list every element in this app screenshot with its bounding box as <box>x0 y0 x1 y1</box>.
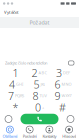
button[interactable]: Backspace <box>67 115 74 122</box>
staticText: 0 <box>35 100 41 114</box>
button[interactable]: 5 <box>28 78 51 90</box>
button[interactable]: * <box>4 101 28 113</box>
staticText: Požadat <box>29 19 49 26</box>
button[interactable]: Poslední <box>20 125 40 140</box>
staticText: GHI <box>16 82 23 87</box>
button[interactable]: Oblíbené <box>0 125 20 140</box>
button[interactable]: Hide keypad <box>5 115 12 122</box>
staticText: TUV <box>39 93 46 98</box>
staticText: 4 <box>9 77 15 91</box>
button[interactable]: 8 <box>28 90 51 101</box>
staticText: PQRS <box>15 93 24 98</box>
staticText: Poslední <box>23 134 37 139</box>
button[interactable]: Video call <box>68 61 74 65</box>
staticText: 8 <box>33 89 39 103</box>
button[interactable]: Požadat <box>0 17 79 28</box>
staticText: DEF <box>63 70 70 75</box>
staticText: 6 <box>55 77 61 91</box>
staticText: Kontakty <box>42 134 56 139</box>
staticText: 7 <box>8 89 14 103</box>
button[interactable]: Hlasová <box>59 125 79 140</box>
button[interactable]: 2 <box>28 67 51 78</box>
staticText: Vytáčet <box>4 9 19 15</box>
staticText: ABC <box>38 70 47 75</box>
staticText: 3 <box>56 66 62 80</box>
staticText: * <box>13 100 19 114</box>
staticText: Hlasová <box>62 134 76 139</box>
staticText: + <box>42 105 44 110</box>
button[interactable]: 1 <box>4 67 28 78</box>
staticText: # <box>59 100 66 114</box>
staticText: 5 <box>34 77 40 91</box>
staticText: MNO <box>61 82 71 87</box>
button[interactable]: Kontakty <box>39 125 59 140</box>
button[interactable]: # <box>51 101 75 113</box>
button[interactable]: 0 <box>28 101 51 113</box>
button[interactable]: 9 <box>51 90 75 101</box>
button[interactable]: 4 <box>4 78 28 90</box>
staticText: Zadejte číslo nebo telefon <box>5 60 47 66</box>
staticText: 9 <box>55 89 61 103</box>
button[interactable]: 7 <box>4 90 28 101</box>
button[interactable]: Call <box>20 114 58 124</box>
staticText: WXYZ <box>61 93 71 98</box>
staticText: Oblíbené <box>2 134 17 139</box>
staticText: JKL <box>40 82 45 87</box>
button[interactable]: 3 <box>51 67 75 78</box>
button[interactable]: 6 <box>51 78 75 90</box>
staticText: 1 <box>13 66 19 80</box>
staticText: 2 <box>32 66 38 80</box>
